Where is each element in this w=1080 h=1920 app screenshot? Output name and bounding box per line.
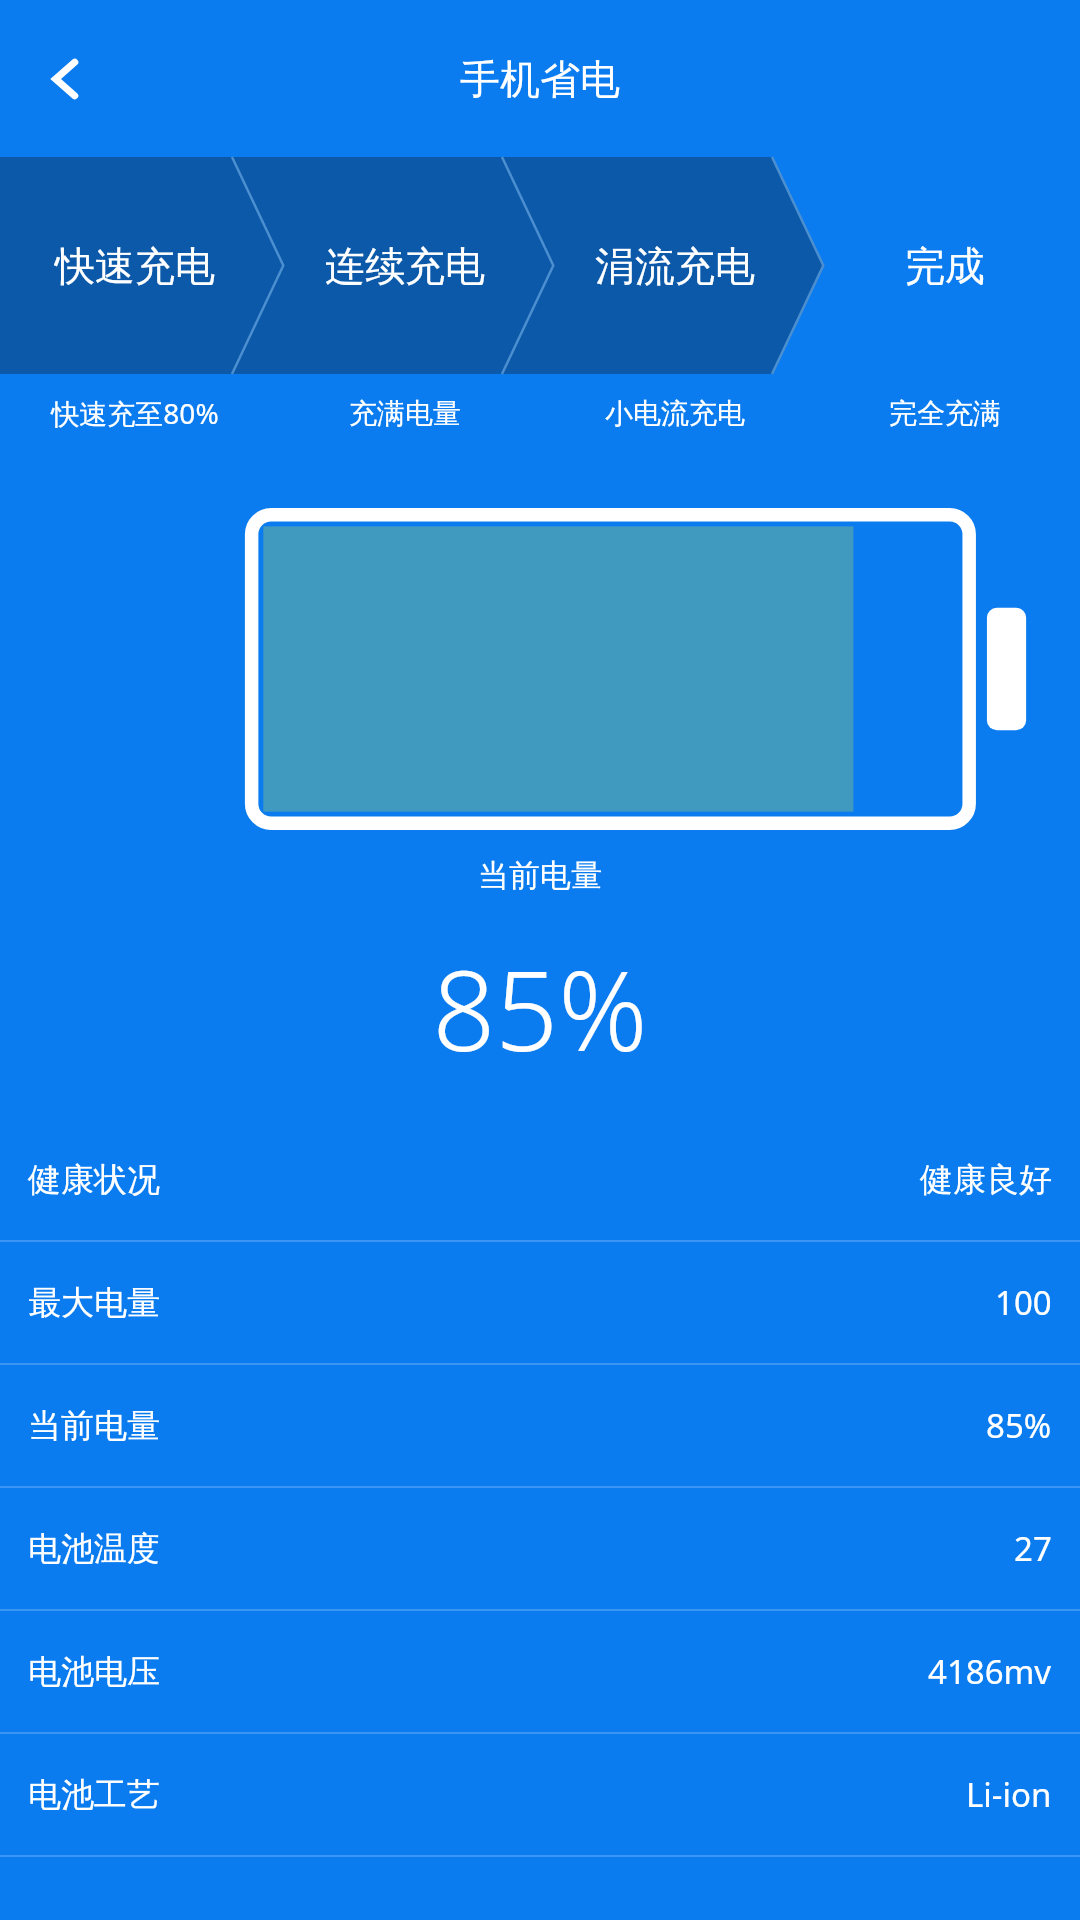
button[interactable]: 电池工艺 bbox=[0, 1734, 1080, 1855]
button[interactable]: 最大电量 bbox=[0, 1242, 1080, 1363]
staticText: 27 bbox=[1014, 1526, 1052, 1571]
staticText: 电池温度 bbox=[28, 1528, 160, 1570]
staticText: 涓流充电 bbox=[595, 241, 755, 291]
button[interactable]: 健康状况 bbox=[0, 1119, 1080, 1240]
staticText: 充满电量 bbox=[349, 396, 461, 431]
button[interactable]: 快速充电 bbox=[0, 157, 270, 374]
staticText: 小电流充电 bbox=[605, 396, 745, 431]
staticText: 快速充电 bbox=[55, 241, 215, 291]
staticText: 当前电量 bbox=[28, 1405, 160, 1447]
button[interactable]: 当前电量 bbox=[0, 1365, 1080, 1486]
staticText: 当前电量 bbox=[0, 856, 1080, 895]
staticText: 健康良好 bbox=[920, 1159, 1052, 1201]
staticText: 完成 bbox=[905, 241, 985, 291]
staticText: 85% bbox=[986, 1403, 1052, 1448]
staticText: 电池工艺 bbox=[28, 1774, 160, 1816]
staticText: 完全充满 bbox=[889, 396, 1001, 431]
button[interactable]: Back bbox=[28, 41, 104, 117]
button[interactable]: 电池电压 bbox=[0, 1611, 1080, 1732]
staticText: 健康状况 bbox=[28, 1159, 160, 1201]
staticText: Li-ion bbox=[966, 1772, 1052, 1817]
staticText: 最大电量 bbox=[28, 1282, 160, 1324]
button[interactable]: 电池温度 bbox=[0, 1488, 1080, 1609]
staticText: 100 bbox=[995, 1280, 1052, 1325]
staticText: 85% bbox=[0, 933, 1080, 1083]
button[interactable]: 完成 bbox=[810, 157, 1080, 374]
staticText: 连续充电 bbox=[325, 241, 485, 291]
staticText: 手机省电 bbox=[460, 54, 620, 104]
button[interactable]: 连续充电 bbox=[270, 157, 540, 374]
staticText: 4186mv bbox=[928, 1649, 1052, 1694]
staticText: 快速充至80% bbox=[51, 394, 219, 432]
button[interactable]: 涓流充电 bbox=[540, 157, 810, 374]
staticText: 电池电压 bbox=[28, 1651, 160, 1693]
